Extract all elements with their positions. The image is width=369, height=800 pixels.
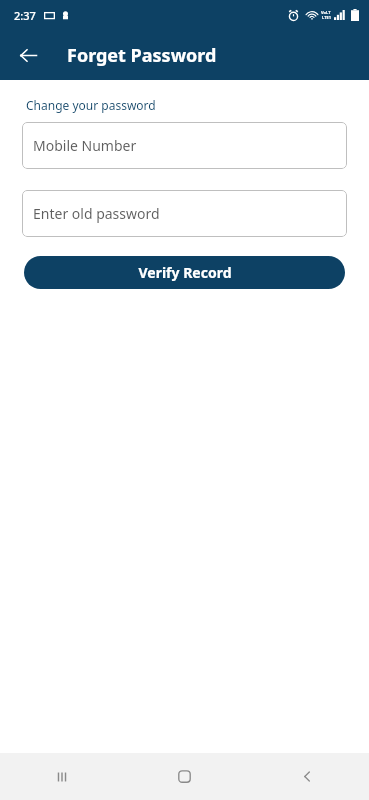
- staticText: Forget Password: [67, 43, 217, 68]
- button[interactable]: Enter old password: [22, 190, 347, 237]
- staticText: Change your password: [26, 97, 156, 113]
- button[interactable]: Mobile Number: [22, 122, 347, 169]
- button[interactable]: Verify Record: [24, 256, 345, 289]
- staticText: LTE1: [322, 15, 331, 20]
- staticText: VoLT: [321, 10, 331, 15]
- button[interactable]: Back: [10, 37, 46, 73]
- button[interactable]: Recent apps: [0, 753, 123, 800]
- staticText: 2:37: [14, 8, 36, 23]
- staticText: Enter old password: [33, 204, 160, 223]
- button[interactable]: Home: [123, 753, 246, 800]
- staticText: Mobile Number: [33, 136, 137, 155]
- staticText: Verify Record: [138, 263, 232, 282]
- button[interactable]: Back: [246, 753, 369, 800]
